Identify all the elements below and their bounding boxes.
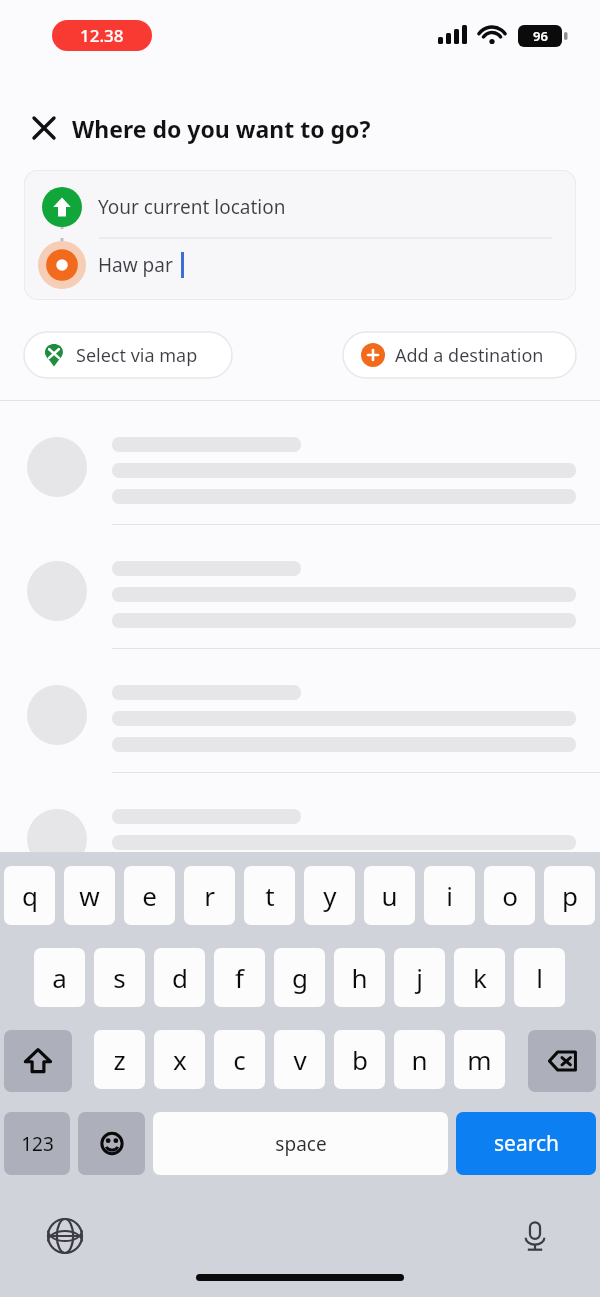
button[interactable]: Add a destination [343, 332, 576, 378]
staticText: j [416, 960, 423, 995]
button[interactable]: Close [22, 106, 66, 150]
staticText: l [536, 960, 543, 995]
button[interactable]: n [394, 1030, 445, 1089]
staticText: 12.38 [80, 24, 124, 47]
staticText: p [562, 878, 578, 913]
staticText: space [275, 1131, 327, 1157]
button[interactable]: Dictate [508, 1209, 562, 1263]
button[interactable]: search [456, 1112, 596, 1175]
staticText: e [142, 878, 157, 913]
staticText: q [22, 878, 38, 913]
button[interactable]: d [154, 948, 205, 1007]
staticText: Select via map [76, 343, 198, 368]
button[interactable]: g [274, 948, 325, 1007]
staticText: z [113, 1042, 126, 1077]
button[interactable]: 123 [4, 1112, 70, 1175]
staticText: d [172, 960, 188, 995]
button[interactable]: space [153, 1112, 448, 1175]
button[interactable]: u [364, 866, 415, 925]
button[interactable]: j [394, 948, 445, 1007]
staticText: Add a destination [395, 343, 544, 368]
button[interactable]: o [484, 866, 535, 925]
staticText: t [265, 878, 275, 913]
button[interactable]: Your current location [24, 180, 576, 234]
staticText: r [204, 878, 215, 913]
button[interactable]: x [154, 1030, 205, 1089]
button[interactable]: r [184, 866, 235, 925]
staticText: w [79, 878, 100, 913]
button[interactable]: Select via map [24, 332, 232, 378]
button[interactable]: m [454, 1030, 505, 1089]
button[interactable]: b [334, 1030, 385, 1089]
staticText: v [293, 1042, 307, 1077]
button[interactable]: z [94, 1030, 145, 1089]
button[interactable]: e [124, 866, 175, 925]
button[interactable]: p [544, 866, 595, 925]
button[interactable]: s [94, 948, 145, 1007]
staticText: Your current location [98, 194, 286, 220]
button[interactable]: v [274, 1030, 325, 1089]
button[interactable]: Shift [4, 1030, 72, 1092]
staticText: 123 [21, 1131, 54, 1157]
button[interactable]: l [514, 948, 565, 1007]
staticText: h [351, 960, 368, 995]
staticText: u [381, 878, 398, 913]
button[interactable]: Change language [38, 1209, 92, 1263]
button[interactable]: Emoji [78, 1112, 145, 1175]
staticText: Where do you want to go? [72, 113, 371, 144]
button[interactable]: i [424, 866, 475, 925]
button[interactable]: f [214, 948, 265, 1007]
staticText: i [446, 878, 453, 913]
button[interactable]: w [64, 866, 115, 925]
staticText: k [473, 960, 487, 995]
staticText: c [233, 1042, 246, 1077]
button[interactable]: t [244, 866, 295, 925]
staticText: 96 [533, 27, 548, 45]
staticText: n [411, 1042, 428, 1077]
staticText: search [494, 1129, 559, 1158]
staticText: m [467, 1042, 492, 1077]
button[interactable]: q [4, 866, 55, 925]
button[interactable]: y [304, 866, 355, 925]
button[interactable]: Backspace [528, 1030, 596, 1092]
button[interactable]: a [34, 948, 85, 1007]
staticText: a [52, 960, 67, 995]
staticText: b [352, 1042, 368, 1077]
button[interactable]: k [454, 948, 505, 1007]
staticText: s [113, 960, 126, 995]
staticText: Haw par [98, 252, 173, 278]
button[interactable]: Haw par [24, 238, 576, 292]
staticText: o [502, 878, 518, 913]
button[interactable]: c [214, 1030, 265, 1089]
staticText: x [173, 1042, 187, 1077]
staticText: f [235, 960, 244, 995]
staticText: g [292, 960, 308, 995]
button[interactable]: h [334, 948, 385, 1007]
staticText: y [323, 878, 337, 913]
